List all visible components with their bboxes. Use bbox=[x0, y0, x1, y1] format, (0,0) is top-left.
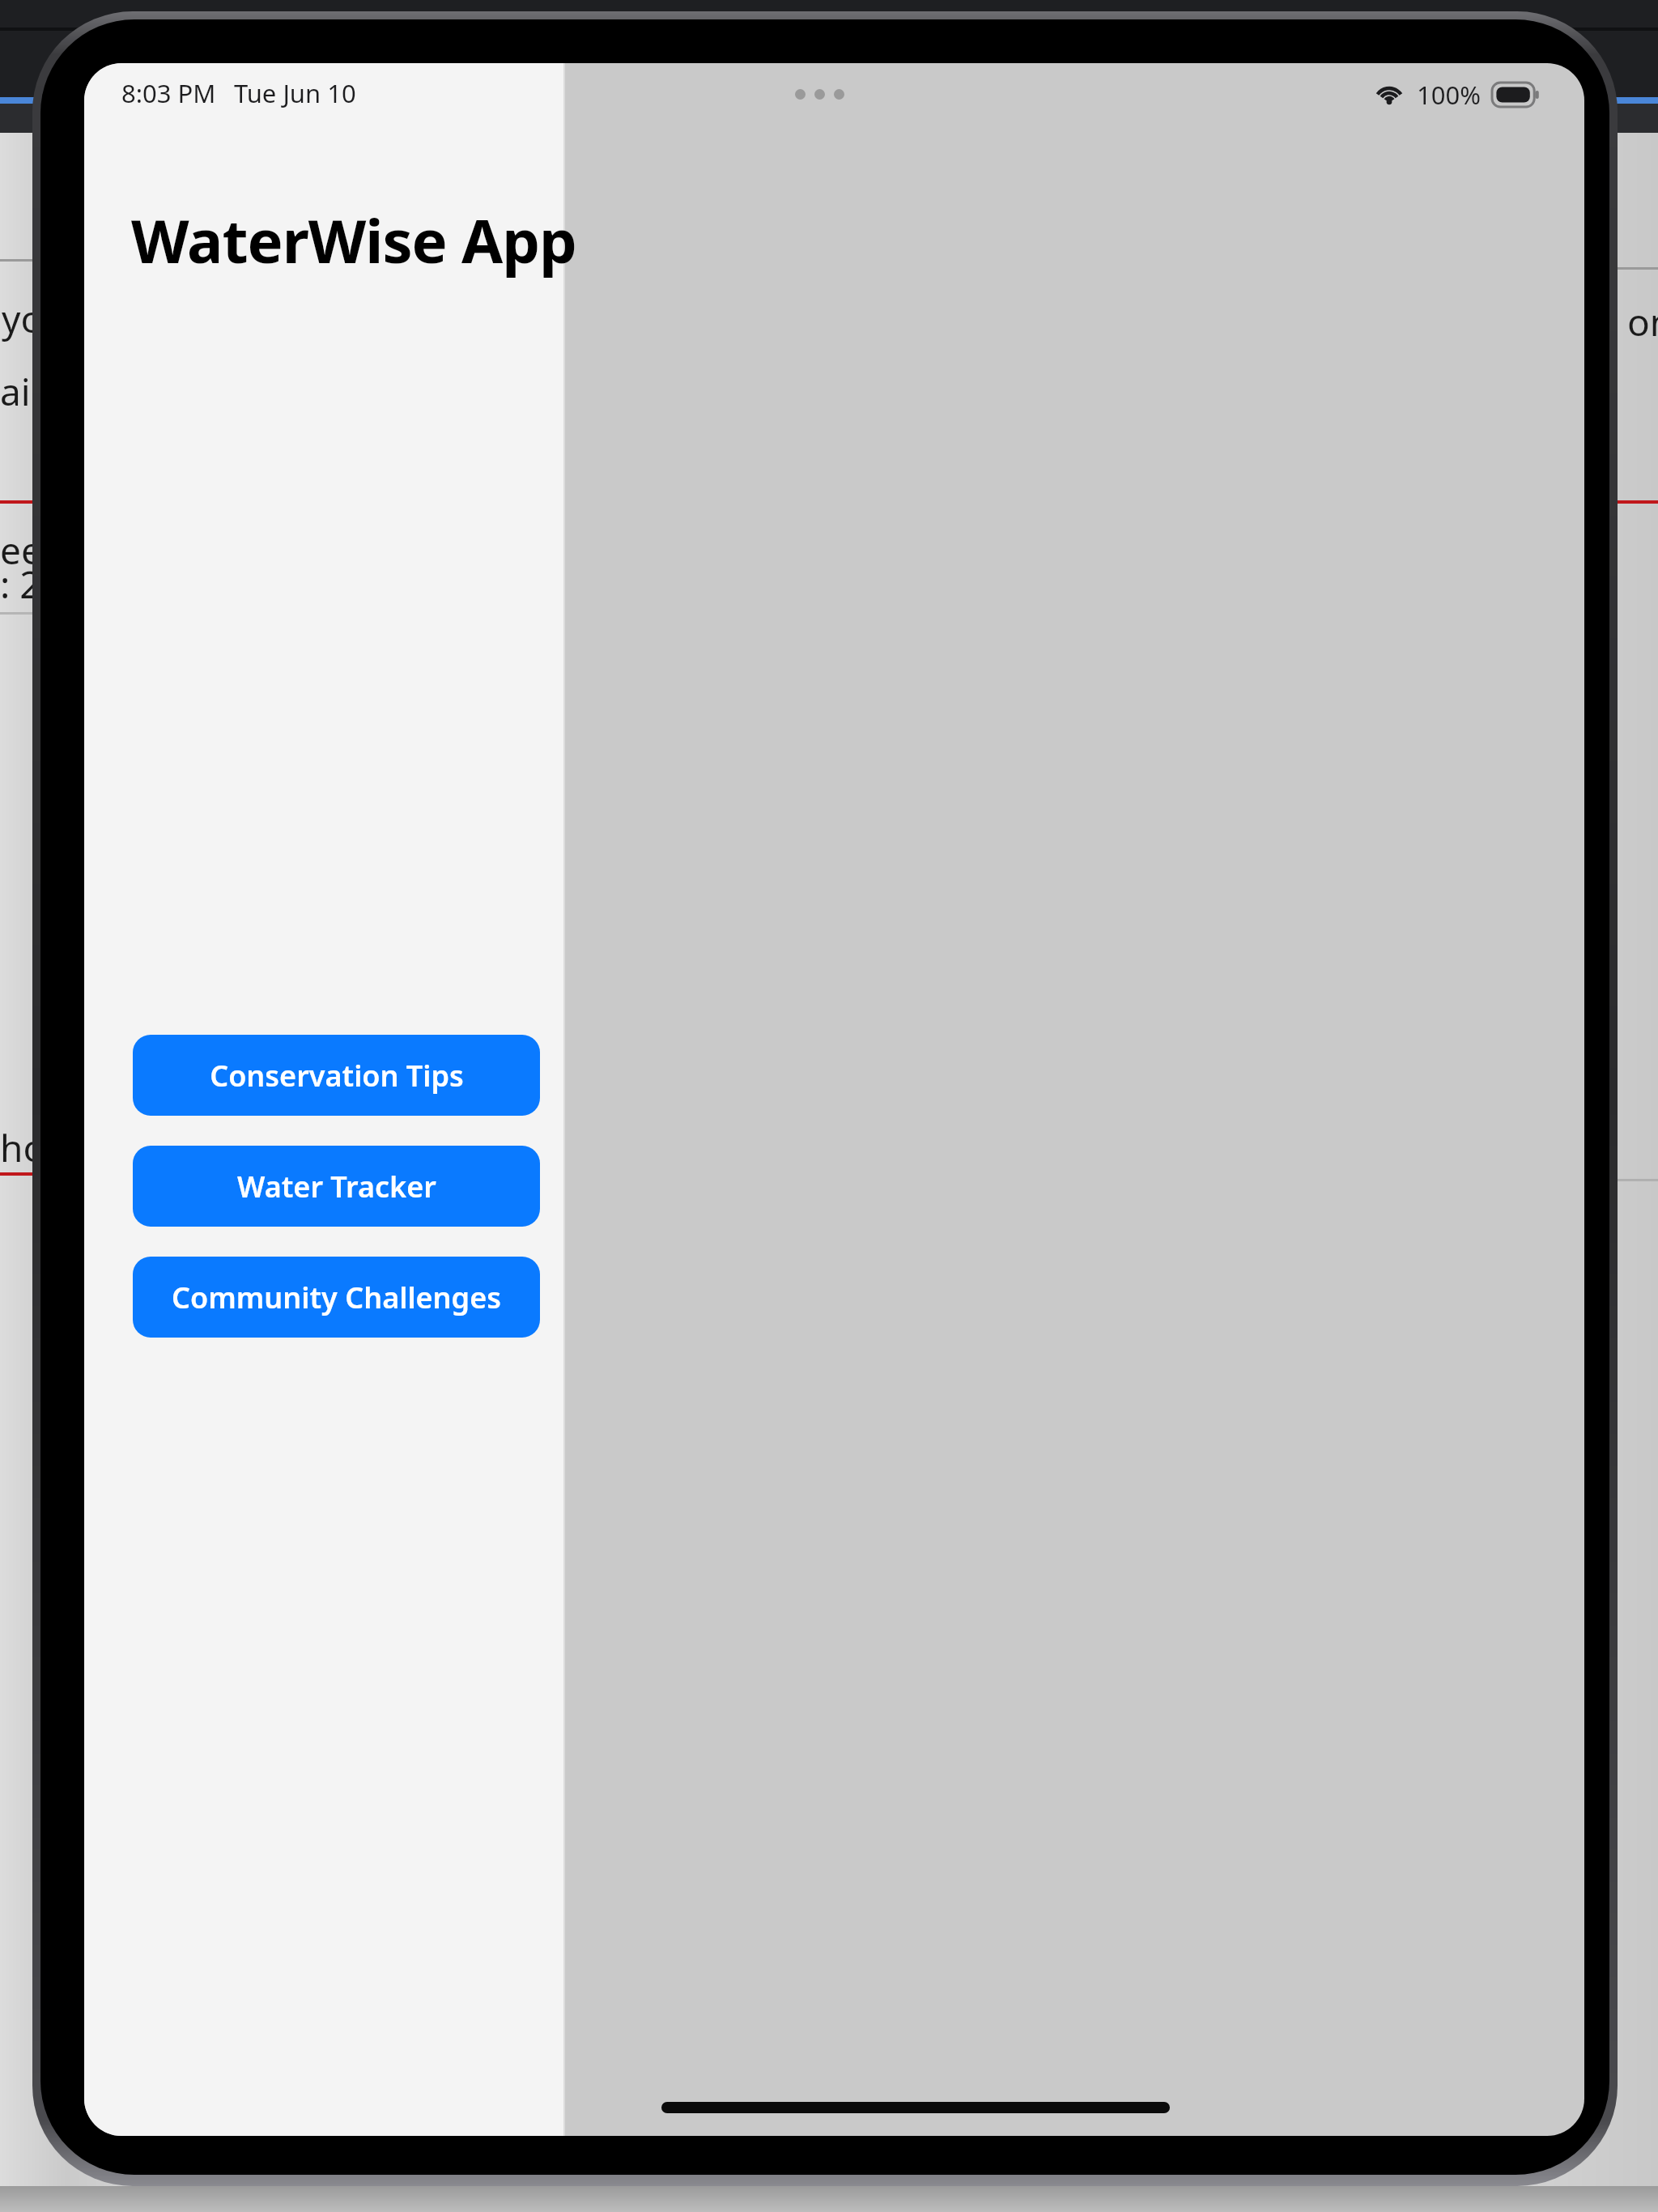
staticText: 100% bbox=[1417, 78, 1481, 112]
staticText: Community Challenges bbox=[172, 1278, 501, 1317]
button[interactable]: Conservation Tips bbox=[133, 1035, 540, 1116]
staticText: hot bbox=[0, 1122, 59, 1173]
button[interactable]: Water Tracker bbox=[133, 1146, 540, 1227]
staticText: ail bbox=[0, 366, 40, 417]
staticText: : 20 bbox=[0, 559, 62, 610]
staticText: 8:03 PM bbox=[121, 76, 216, 110]
staticText: WaterWise App bbox=[131, 199, 576, 281]
button[interactable]: Community Challenges bbox=[133, 1257, 540, 1338]
button[interactable]: Multitasking controls bbox=[795, 89, 844, 100]
staticText: eer bbox=[0, 525, 57, 576]
staticText: Water Tracker bbox=[237, 1167, 436, 1206]
staticText: on bbox=[1627, 296, 1658, 347]
staticText: yo bbox=[2, 293, 44, 344]
staticText: Conservation Tips bbox=[210, 1056, 464, 1095]
staticText: Tue Jun 10 bbox=[234, 76, 356, 110]
